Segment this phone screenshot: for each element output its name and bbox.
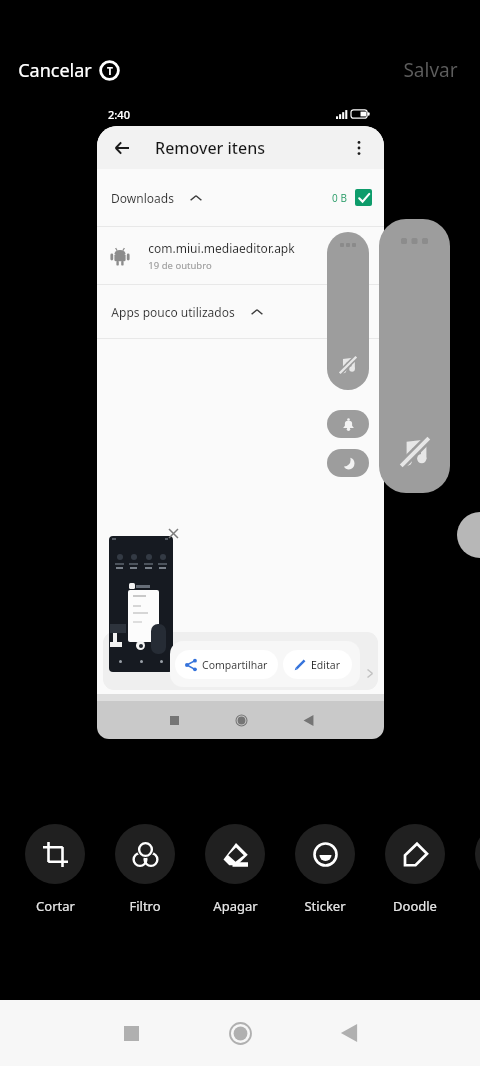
button[interactable]: Selected <box>355 189 372 206</box>
staticText: Doodle <box>393 897 437 915</box>
staticText: T <box>107 64 113 78</box>
staticText: 2:40 <box>108 107 130 122</box>
button[interactable]: Salvar <box>399 49 462 91</box>
button[interactable]: Home <box>221 701 261 739</box>
button[interactable]: Sticker <box>283 824 367 915</box>
staticText: 19 de outubro <box>148 259 212 272</box>
button[interactable]: Downloads <box>97 169 384 226</box>
button[interactable]: Back <box>111 137 133 159</box>
button[interactable]: Recents <box>154 701 194 739</box>
staticText: Cortar <box>36 897 75 915</box>
staticText: Apps pouco utilizados <box>111 304 235 320</box>
button[interactable]: Compartilhar <box>175 650 278 679</box>
button[interactable]: Apagar <box>193 824 277 915</box>
button[interactable]: Filtro <box>103 824 187 915</box>
staticText: Downloads <box>111 190 174 206</box>
staticText: Editar <box>311 658 341 672</box>
button[interactable]: Cancelar <box>18 50 120 91</box>
button[interactable]: Editar <box>283 650 352 679</box>
button[interactable]: Dismiss <box>164 524 182 542</box>
button[interactable]: Volume slider <box>379 219 450 493</box>
button[interactable]: Ring mode <box>327 410 369 438</box>
button[interactable]: Screenshot thumbnail <box>109 536 173 672</box>
staticText: Cancelar <box>18 58 92 83</box>
button[interactable]: Home <box>220 1013 260 1053</box>
button[interactable]: Cortar <box>13 824 97 915</box>
staticText: Salvar <box>403 57 458 83</box>
button[interactable]: Recents <box>111 1013 151 1053</box>
button[interactable]: More options <box>348 137 370 159</box>
button[interactable]: Volume <box>327 232 369 390</box>
button[interactable]: Back <box>329 1013 369 1053</box>
button[interactable]: Doodle <box>373 824 457 915</box>
staticText: 0 B <box>332 191 347 205</box>
staticText: Filtro <box>129 897 161 915</box>
button[interactable]: Back <box>288 701 328 739</box>
staticText: Sticker <box>304 897 346 915</box>
button[interactable]: Apps pouco utilizados <box>97 285 384 338</box>
button[interactable]: com.miui.mediaeditor.apk <box>97 227 384 284</box>
button[interactable]: Resize handle <box>457 512 480 558</box>
staticText: Remover itens <box>155 137 265 159</box>
staticText: Apagar <box>213 897 258 915</box>
staticText: com.miui.mediaeditor.apk <box>148 240 295 256</box>
staticText: Compartilhar <box>202 658 268 672</box>
button[interactable]: Do not disturb <box>327 449 369 477</box>
